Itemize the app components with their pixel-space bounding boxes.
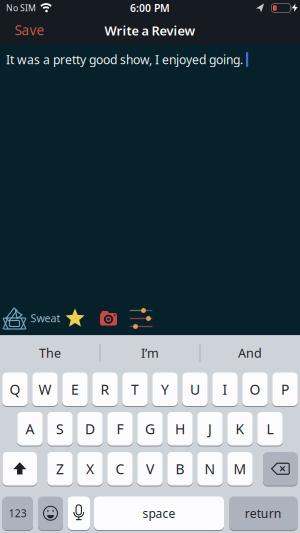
- button[interactable]: return: [229, 496, 297, 530]
- button[interactable]: Q: [2, 372, 28, 406]
- staticText: N: [204, 459, 215, 478]
- staticText: return: [245, 505, 282, 522]
- button[interactable]: D: [77, 411, 103, 446]
- button[interactable]: E: [62, 372, 88, 406]
- staticText: S: [56, 419, 64, 438]
- button[interactable]: H: [167, 411, 193, 446]
- button[interactable]: Dictate: [67, 496, 90, 530]
- button[interactable]: Z: [47, 451, 73, 486]
- staticText: The: [39, 344, 61, 362]
- button[interactable]: Shift: [2, 451, 37, 486]
- staticText: A: [25, 419, 34, 438]
- button[interactable]: M: [227, 451, 253, 486]
- button[interactable]: P: [272, 372, 298, 406]
- staticText: V: [146, 459, 154, 478]
- button[interactable]: O: [242, 372, 268, 406]
- button[interactable]: S: [47, 411, 73, 446]
- staticText: H: [175, 419, 185, 438]
- staticText: E: [71, 380, 79, 399]
- button[interactable]: Numbers: [2, 496, 33, 530]
- staticText: It was a pretty good show, I enjoyed goi…: [6, 51, 243, 68]
- staticText: 123: [9, 506, 27, 520]
- staticText: I: [222, 380, 227, 399]
- button[interactable]: Save: [7, 18, 51, 42]
- button[interactable]: X: [77, 451, 103, 486]
- staticText: O: [249, 380, 260, 399]
- staticText: F: [116, 419, 123, 438]
- button[interactable]: Adjust: [129, 307, 152, 329]
- staticText: space: [142, 505, 175, 521]
- button[interactable]: B: [167, 451, 193, 486]
- staticText: X: [86, 459, 94, 478]
- button[interactable]: T: [122, 372, 148, 406]
- button[interactable]: I: [212, 372, 238, 406]
- button[interactable]: G: [137, 411, 163, 446]
- button[interactable]: W: [32, 372, 58, 406]
- button[interactable]: N: [197, 451, 223, 486]
- button[interactable]: C: [107, 451, 133, 486]
- staticText: I’m: [141, 344, 159, 362]
- staticText: P: [281, 380, 289, 399]
- staticText: Q: [9, 380, 20, 399]
- button[interactable]: Delete: [263, 451, 297, 486]
- button[interactable]: Emoji: [38, 496, 63, 530]
- staticText: C: [115, 459, 124, 478]
- staticText: W: [38, 380, 51, 399]
- button[interactable]: F: [107, 411, 133, 446]
- button[interactable]: U: [182, 372, 208, 406]
- button[interactable]: K: [227, 411, 253, 446]
- staticText: K: [235, 419, 244, 438]
- staticText: T: [131, 380, 139, 399]
- staticText: U: [190, 380, 200, 399]
- staticText: Y: [161, 380, 169, 399]
- button[interactable]: Rate: [65, 308, 85, 328]
- staticText: No SIM: [6, 2, 36, 14]
- button[interactable]: Y: [152, 372, 178, 406]
- staticText: R: [100, 380, 109, 399]
- staticText: L: [266, 419, 273, 438]
- button[interactable]: R: [92, 372, 118, 406]
- staticText: And: [238, 344, 262, 362]
- button[interactable]: J: [197, 411, 223, 446]
- staticText: Z: [56, 459, 64, 478]
- button[interactable]: Sweat: [2, 306, 60, 330]
- button[interactable]: V: [137, 451, 163, 486]
- button[interactable]: I’m: [101, 336, 199, 370]
- staticText: Sweat: [30, 311, 60, 325]
- button[interactable]: The: [1, 336, 99, 370]
- button[interactable]: And: [201, 336, 299, 370]
- staticText: M: [233, 459, 246, 478]
- staticText: 6:00 PM: [130, 1, 170, 15]
- button[interactable]: space: [94, 496, 224, 530]
- button[interactable]: L: [257, 411, 283, 446]
- staticText: Save: [14, 21, 44, 39]
- staticText: B: [175, 459, 184, 478]
- staticText: J: [208, 419, 212, 438]
- staticText: D: [85, 419, 95, 438]
- button[interactable]: A: [17, 411, 43, 446]
- button[interactable]: Add photo: [99, 311, 117, 326]
- staticText: Write a Review: [104, 22, 195, 39]
- staticText: G: [145, 419, 155, 438]
